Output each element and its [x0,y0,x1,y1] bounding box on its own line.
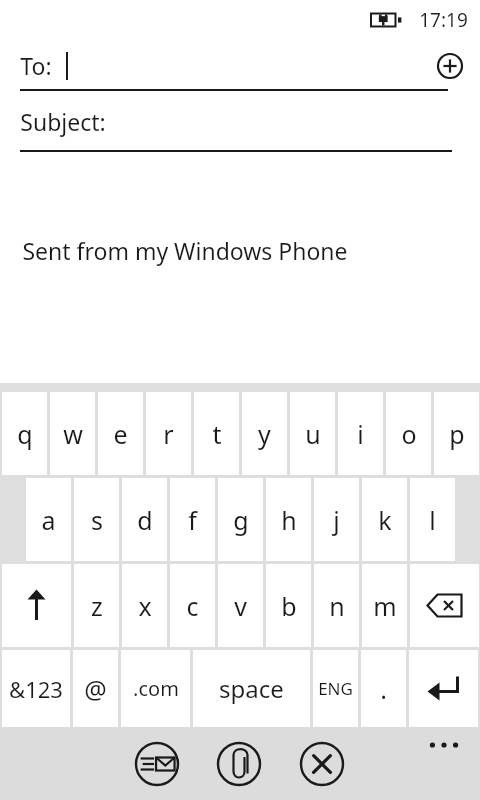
staticText: o [401,417,417,451]
button[interactable]: d [122,478,167,561]
staticText: f [188,503,197,537]
staticText: k [378,503,392,537]
button[interactable]: s [74,478,119,561]
staticText: l [429,503,436,537]
staticText: Subject: [20,106,106,137]
staticText: v [234,589,247,623]
button[interactable]: y [242,392,287,475]
button[interactable]: n [314,564,359,647]
button[interactable]: u [290,392,335,475]
button[interactable]: Subject: [0,91,480,152]
staticText: i [357,417,364,451]
button[interactable]: w [50,392,95,475]
staticText: g [233,503,249,537]
button[interactable]: h [266,478,311,561]
button[interactable]: ENG [313,650,358,727]
staticText: u [305,417,321,451]
staticText: ENG [318,677,353,700]
button[interactable]: @ [73,650,118,727]
staticText: .com [133,675,179,702]
staticText: j [333,503,340,537]
button[interactable]: z [74,564,119,647]
staticText: Sent from my Windows Phone [22,235,348,266]
staticText: a [41,503,56,537]
button[interactable]: . [361,650,406,727]
staticText: space [219,672,284,705]
staticText: w [63,417,83,451]
staticText: . [380,672,387,706]
button[interactable]: o [386,392,431,475]
button[interactable]: c [170,564,215,647]
button[interactable]: g [218,478,263,561]
staticText: @ [84,672,107,706]
staticText: s [91,503,103,537]
button[interactable]: t [194,392,239,475]
button[interactable]: v [218,564,263,647]
button[interactable]: a [26,478,71,561]
button[interactable]: i [338,392,383,475]
button[interactable]: Enter [409,650,478,727]
button[interactable]: To: [0,40,480,91]
button[interactable]: space [193,650,310,727]
button[interactable]: More options [420,727,468,763]
button[interactable]: Shift [2,564,71,647]
staticText: p [449,417,465,451]
staticText: z [91,589,103,623]
staticText: n [329,589,345,623]
button[interactable]: .com [121,650,190,727]
staticText: q [17,417,33,451]
staticText: h [281,503,297,537]
staticText: x [138,589,152,623]
staticText: To: [20,50,52,81]
button[interactable]: j [314,478,359,561]
staticText: &123 [9,674,63,704]
button[interactable]: Backspace [410,564,479,647]
staticText: b [281,589,297,623]
button[interactable]: Add recipient [430,46,470,86]
button[interactable]: Sent from my Windows Phone [0,152,480,383]
button[interactable]: x [122,564,167,647]
button[interactable]: m [362,564,407,647]
button[interactable]: p [434,392,479,475]
staticText: d [137,503,153,537]
staticText: t [212,417,222,451]
button[interactable]: r [146,392,191,475]
button[interactable]: k [362,478,407,561]
button[interactable]: &123 [2,650,70,727]
staticText: c [186,589,199,623]
button[interactable]: q [2,392,47,475]
staticText: e [113,417,128,451]
staticText: y [258,417,271,451]
button[interactable]: b [266,564,311,647]
button[interactable]: l [410,478,455,561]
staticText: r [163,417,174,451]
staticText: m [373,589,397,623]
button[interactable]: Close [296,738,348,790]
button[interactable]: e [98,392,143,475]
staticText: 17:19 [419,7,468,33]
button[interactable]: Attach [213,738,265,790]
button[interactable]: Send [131,738,183,790]
button[interactable]: f [170,478,215,561]
